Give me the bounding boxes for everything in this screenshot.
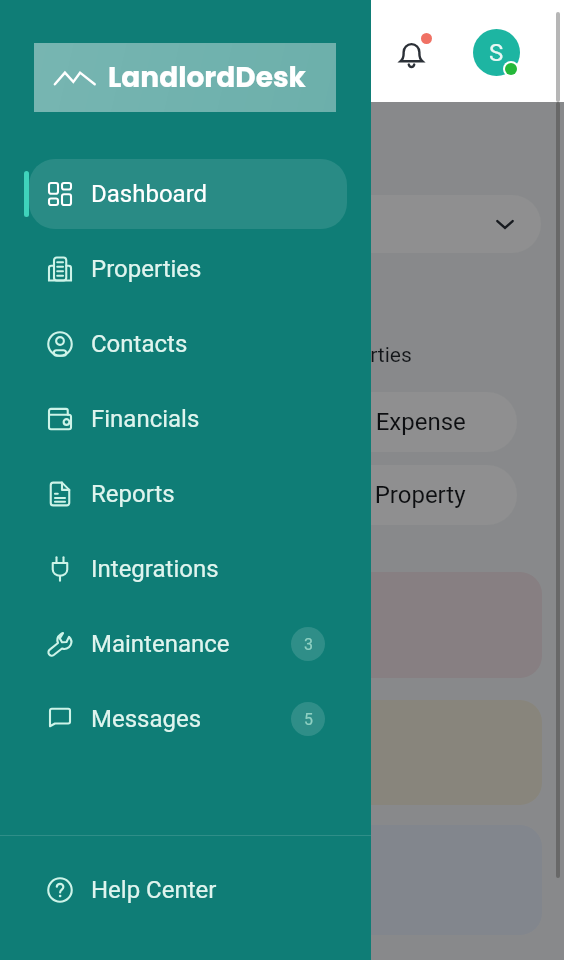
staticText: Reports: [91, 480, 175, 508]
button[interactable]: Help Center: [29, 855, 347, 925]
button[interactable]: Properties: [29, 234, 347, 304]
button[interactable]: Profile: [473, 29, 520, 76]
button[interactable]: Financials: [29, 384, 347, 454]
staticText: Help Center: [91, 876, 217, 904]
staticText: Maintenance: [91, 630, 230, 658]
staticText: Contacts: [91, 330, 188, 358]
staticText: Dashboard: [91, 180, 208, 208]
button[interactable]: Integrations: [29, 534, 347, 604]
staticText: Properties: [91, 255, 202, 283]
button[interactable]: Add Property: [27, 465, 517, 525]
staticText: Messages: [91, 705, 202, 733]
button[interactable]: Maintenance: [29, 609, 347, 679]
button[interactable]: Add Expense: [27, 392, 517, 452]
staticText: LandlordDesk: [108, 58, 306, 97]
staticText: Financials: [91, 405, 200, 433]
staticText: 5: [304, 710, 313, 729]
button[interactable]: Contacts: [29, 309, 347, 379]
staticText: 3: [304, 635, 313, 654]
staticText: All Properties: [286, 343, 412, 368]
button[interactable]: Notifications: [386, 28, 437, 79]
staticText: Add Expense: [327, 408, 466, 436]
button[interactable]: Dashboard: [29, 159, 347, 229]
button[interactable]: Messages: [29, 684, 347, 754]
staticText: All Properties: [53, 212, 179, 237]
staticText: Integrations: [91, 555, 219, 583]
staticText: S: [489, 39, 504, 67]
staticText: Add Property: [326, 481, 466, 509]
button[interactable]: Reports: [29, 459, 347, 529]
